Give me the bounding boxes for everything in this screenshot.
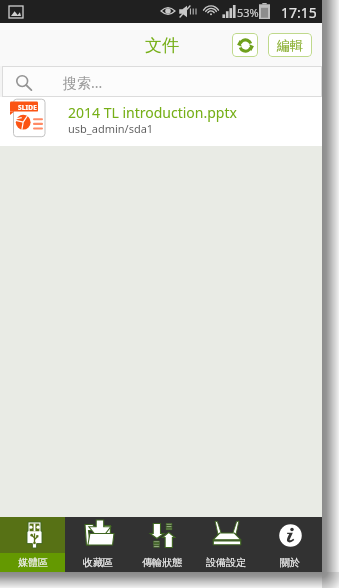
staticText: 傳輸狀態	[142, 556, 182, 569]
button[interactable]: 編輯	[268, 33, 312, 57]
button[interactable]: 媒體區	[0, 517, 65, 572]
staticText: 17:15	[281, 3, 317, 22]
staticText: 文件	[145, 35, 179, 56]
staticText: 關於	[280, 556, 300, 569]
button[interactable]: Refresh	[232, 33, 258, 57]
button[interactable]: 搜索...	[2, 66, 322, 97]
staticText: 2014 TL introduction.pptx	[68, 103, 237, 122]
button[interactable]: 收藏區	[65, 517, 130, 572]
staticText: 媒體區	[18, 556, 48, 569]
button[interactable]: 關於	[258, 517, 322, 572]
staticText: 收藏區	[83, 556, 113, 569]
staticText: 編輯	[277, 37, 303, 53]
staticText: 設備設定	[206, 556, 246, 569]
button[interactable]: 設備設定	[194, 517, 258, 572]
button[interactable]: SLIDE	[0, 97, 322, 146]
staticText: usb_admin/sda1	[68, 121, 154, 136]
staticText: SLIDE	[18, 103, 38, 112]
staticText: 53%	[237, 5, 259, 20]
button[interactable]: 傳輸狀態	[130, 517, 194, 572]
staticText: 搜索...	[63, 73, 103, 92]
